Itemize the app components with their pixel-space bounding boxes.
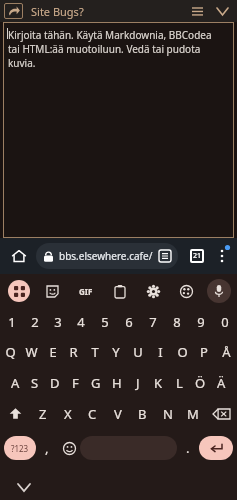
staticText: I [158,343,163,361]
button[interactable]: 0 [213,308,237,336]
staticText: 21 [193,251,202,261]
staticText: Z [39,405,47,423]
button[interactable]: E [42,336,63,367]
button[interactable]: P [193,336,215,367]
button[interactable]: I [149,336,171,367]
button[interactable]: Reader mode [153,244,177,268]
staticText: K [154,374,163,392]
button[interactable]: H [106,367,127,398]
staticText: 2 [31,313,39,331]
staticText: V [114,405,122,423]
button[interactable]: G [85,367,106,398]
button[interactable]: Switch keyboard [8,280,30,302]
staticText: Y [112,343,120,361]
button[interactable]: Ä [211,367,232,398]
button[interactable]: F [65,367,85,398]
staticText: Kirjoita tähän. Käytä Markdownia, BBCode… [8,28,224,70]
staticText: J [136,374,140,392]
staticText: N [163,405,173,423]
button[interactable]: More options [210,244,234,268]
button[interactable]: Kirjoita tähän. Käytä Markdownia, BBCode… [3,22,234,238]
staticText: R [69,343,78,361]
button[interactable]: Backspace [205,398,237,429]
button[interactable]: ?123 [4,436,36,460]
button[interactable]: N [155,398,180,429]
button[interactable]: M [180,398,205,429]
staticText: C [88,405,97,423]
button[interactable]: 5 [93,308,117,336]
button[interactable]: L [169,367,190,398]
button[interactable]: K [148,367,169,398]
button[interactable]: Enter [199,436,233,460]
staticText: L [176,374,183,392]
button[interactable]: Home [6,243,32,269]
staticText: 3 [54,313,62,331]
button[interactable]: 2 [23,308,46,336]
button[interactable]: Expand [209,0,235,22]
button[interactable]: 8 [165,308,189,336]
button[interactable]: Z [31,398,55,429]
staticText: W [25,343,38,361]
staticText: 1 [8,313,16,331]
staticText: 8 [173,313,181,331]
staticText: Q [5,343,16,361]
staticText: D [50,374,60,392]
button[interactable]: 3 [46,308,69,336]
button[interactable]: 7 [141,308,165,336]
button[interactable]: Ö [190,367,211,398]
button[interactable]: Menu [185,0,209,22]
staticText: GIF [79,286,93,297]
button[interactable]: 9 [189,308,213,336]
staticText: bbs.elsewhere.cafe/ [59,249,153,263]
button[interactable]: Emoji [58,432,80,464]
button[interactable]: Q [0,336,21,367]
button[interactable]: Stickers [40,279,64,303]
button[interactable]: Space [80,436,177,460]
button[interactable]: 4 [69,308,93,336]
button[interactable]: . [177,432,199,464]
button[interactable]: V [105,398,130,429]
button[interactable]: Clipboard [108,279,132,303]
button[interactable]: Voice input [207,279,231,303]
staticText: . [186,439,190,457]
button[interactable]: O [171,336,193,367]
button[interactable]: B [130,398,155,429]
staticText: U [133,343,143,361]
staticText: T [91,343,99,361]
button[interactable]: Å [215,336,237,367]
staticText: 6 [125,313,133,331]
staticText: M [187,405,199,423]
staticText: B [138,405,147,423]
button[interactable]: W [21,336,42,367]
button[interactable]: Reply [4,3,23,19]
staticText: S [31,374,39,392]
button[interactable]: 6 [117,308,141,336]
button[interactable]: bbs.elsewhere.cafe/ [36,243,178,269]
staticText: Ö [195,374,206,392]
button[interactable]: D [45,367,65,398]
button[interactable]: U [127,336,149,367]
button[interactable]: Y [105,336,127,367]
staticText: X [64,405,72,423]
staticText: A [11,374,20,392]
button[interactable]: R [63,336,84,367]
staticText: 5 [101,313,109,331]
staticText: O [177,343,188,361]
button[interactable]: Theme [174,279,198,303]
button[interactable]: 1 [0,308,23,336]
button[interactable]: S [25,367,45,398]
staticText: P [200,343,208,361]
button[interactable]: , [36,432,58,464]
button[interactable]: T [84,336,105,367]
staticText: 7 [149,313,157,331]
button[interactable]: Tabs: 21 [184,243,210,269]
button[interactable]: X [55,398,80,429]
button[interactable]: Shift [0,398,31,429]
staticText: 0 [221,313,229,331]
button[interactable]: J [127,367,148,398]
staticText: ?123 [11,443,29,454]
button[interactable]: A [5,367,25,398]
button[interactable]: C [80,398,105,429]
button[interactable]: Settings [141,279,165,303]
button[interactable]: GIF [73,278,99,304]
